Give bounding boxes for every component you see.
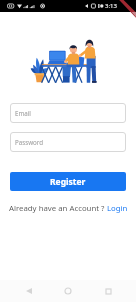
staticText: Already have an Account ? (9, 203, 107, 214)
button[interactable]: Recent apps (97, 280, 119, 302)
button[interactable]: Login (107, 203, 128, 214)
staticText: Email (15, 109, 31, 117)
staticText: Register (50, 176, 86, 188)
button[interactable]: Register (10, 172, 126, 191)
button[interactable]: Home (57, 280, 79, 302)
button[interactable]: Back (18, 280, 40, 302)
staticText: Password (15, 138, 43, 146)
staticText: 3:13 (105, 2, 117, 10)
button[interactable]: Password (10, 132, 126, 152)
button[interactable]: Email (10, 103, 126, 123)
